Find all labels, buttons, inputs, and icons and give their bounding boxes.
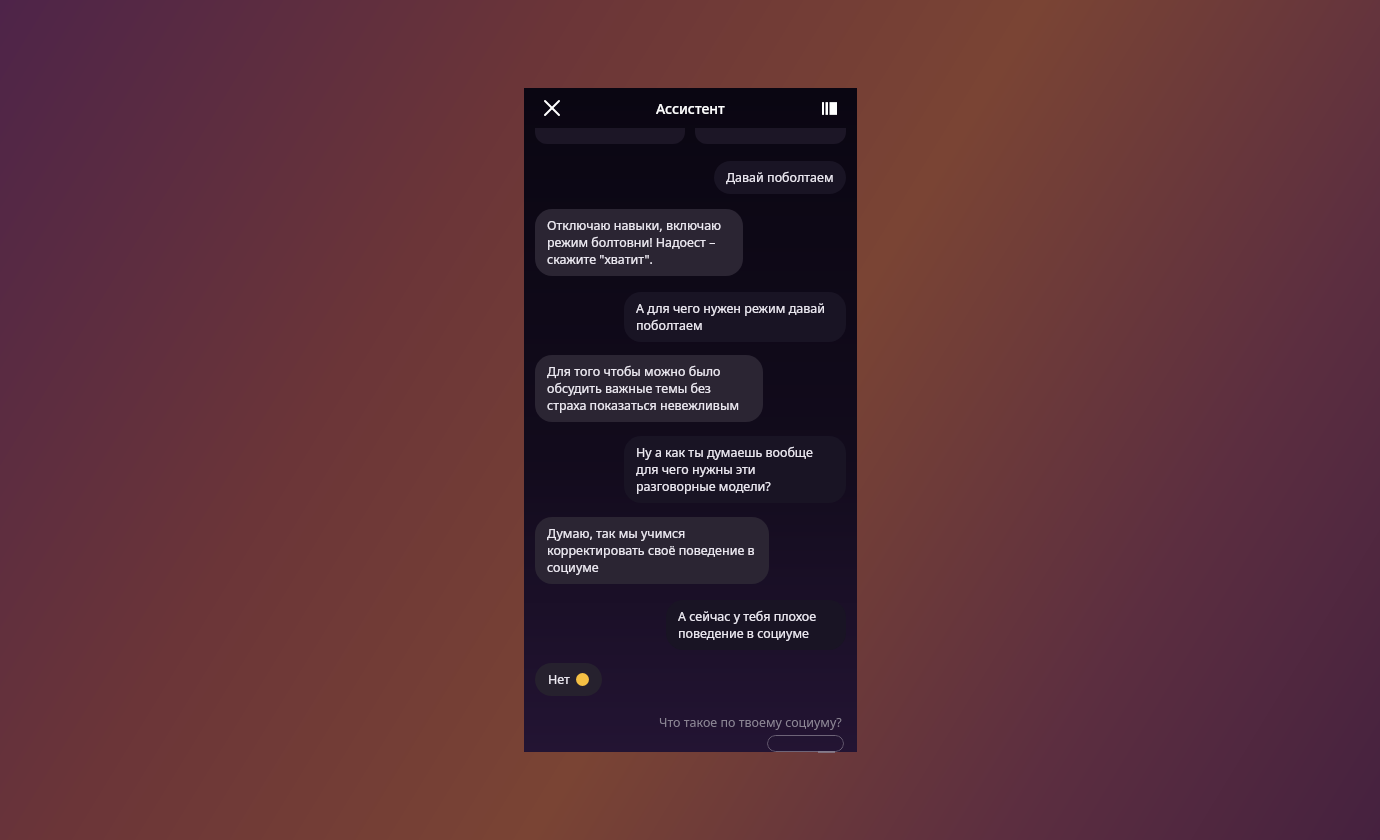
staticText: Ну а как ты думаешь вообще для чего нужн… [636,444,834,495]
staticText: Давай поболтаем [726,169,834,186]
staticText: Ассистент [656,99,725,118]
button[interactable]: Хватит [767,735,844,752]
staticText: Что такое по твоему социуму? [659,714,842,731]
button[interactable]: Думаю, так мы учимся корректировать своё… [535,517,769,584]
button[interactable]: А для чего нужен режим давай поболтаем [624,292,846,342]
staticText: Отключаю навыки, включаю режим болтовни!… [547,217,731,268]
button[interactable]: Что такое по твоему социуму? [655,710,846,735]
staticText: Нет [548,671,570,688]
button[interactable]: А сейчас у тебя плохое поведение в социу… [666,600,846,650]
button[interactable]: History [817,96,841,120]
staticText: А для чего нужен режим давай поболтаем [636,300,834,334]
button[interactable]: Давай поболтаем [714,161,846,194]
staticText: Для того чтобы можно было обсудить важны… [547,363,751,414]
staticText: А сейчас у тебя плохое поведение в социу… [678,608,834,642]
button[interactable]: Ну а как ты думаешь вообще для чего нужн… [624,436,846,503]
staticText: Думаю, так мы учимся корректировать своё… [547,525,757,576]
button[interactable]: Для того чтобы можно было обсудить важны… [535,355,763,422]
button[interactable]: Отключаю навыки, включаю режим болтовни!… [535,209,743,276]
button[interactable]: Нет [535,663,602,696]
button[interactable]: Close [540,96,564,120]
